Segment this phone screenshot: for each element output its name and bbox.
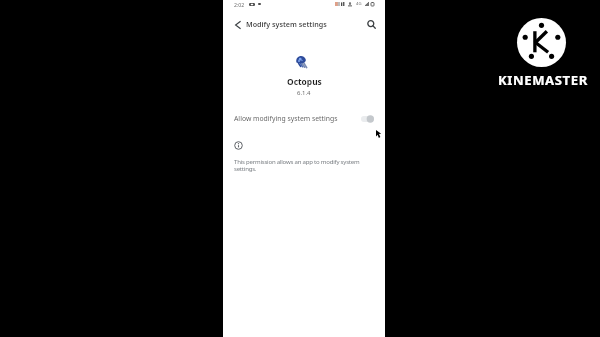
staticText: 6.1.4 [297, 89, 311, 97]
staticText: Allow modifying system settings [234, 114, 338, 123]
staticText: 4G [356, 1, 362, 7]
button[interactable]: Allow modifying system settings toggle [361, 115, 374, 123]
button[interactable]: Search [363, 16, 379, 32]
staticText: 2:02 [234, 1, 245, 8]
staticText: This permission allows an app to modify … [234, 158, 367, 173]
staticText: Modify system settings [246, 19, 327, 29]
button[interactable]: Back [230, 17, 246, 33]
staticText: Octopus [287, 76, 322, 87]
staticText: KINEMASTER [498, 71, 588, 89]
button[interactable]: Allow modifying system settings [223, 110, 385, 127]
